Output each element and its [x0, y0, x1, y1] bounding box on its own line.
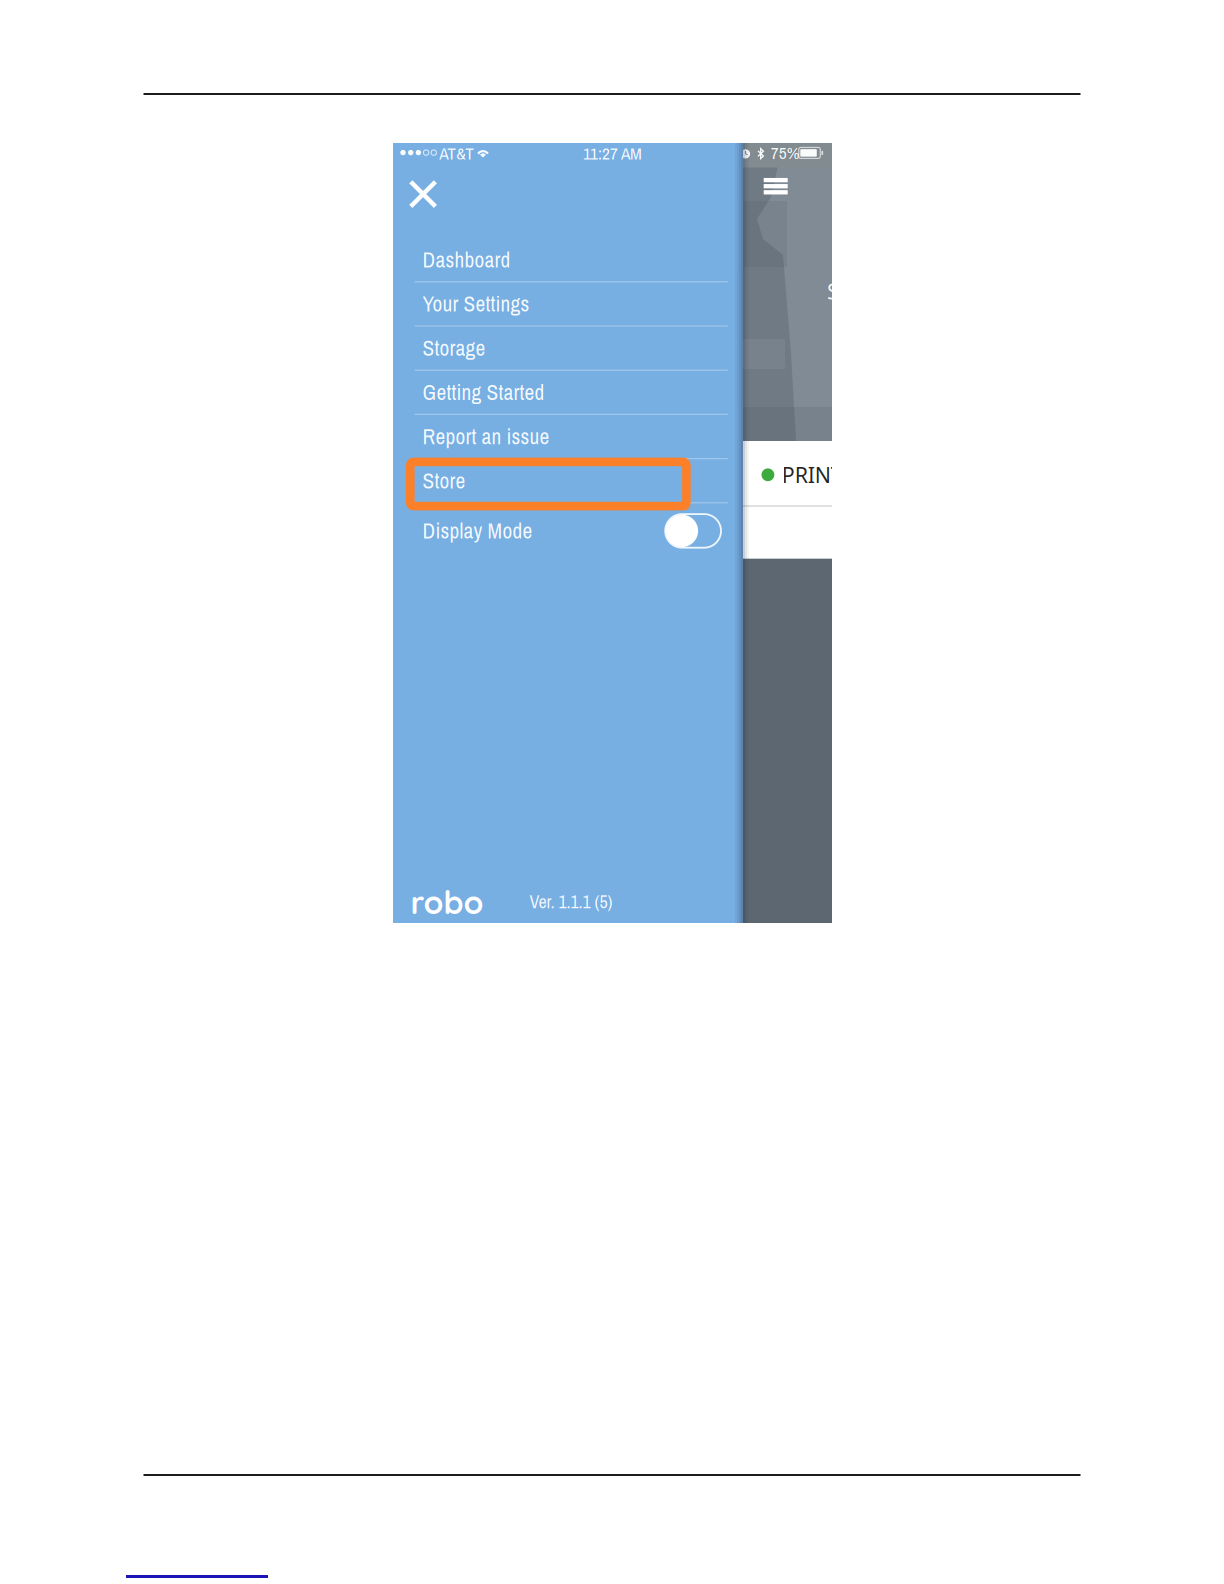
staticText: Report an issue: [423, 422, 550, 451]
staticText: Storage: [423, 334, 486, 362]
staticText: PRINT: [782, 461, 843, 489]
button[interactable]: Getting Started: [393, 371, 743, 414]
staticText: Display Mode: [423, 516, 533, 545]
button[interactable]: Report an issue: [393, 415, 743, 458]
staticText: 11:27 AM: [583, 142, 642, 165]
staticText: AT&T: [439, 142, 474, 165]
button[interactable]: Close menu: [397, 168, 450, 221]
staticText: Your Settings: [423, 289, 530, 318]
staticText: S: [827, 277, 839, 305]
staticText: Store: [423, 466, 466, 495]
staticText: Ver. 1.1.1 (5): [529, 889, 612, 914]
staticText: Dashboard: [423, 245, 511, 274]
button[interactable]: Store: [393, 459, 743, 502]
button[interactable]: Display Mode: [393, 503, 743, 552]
button[interactable]: Dashboard: [393, 238, 743, 281]
button[interactable]: Storage: [393, 327, 743, 370]
staticText: Getting Started: [423, 378, 545, 407]
button[interactable]: Menu: [754, 166, 798, 206]
staticText: 75%: [771, 141, 800, 164]
staticText: robo: [410, 882, 483, 922]
button[interactable]: Your Settings: [393, 282, 743, 325]
